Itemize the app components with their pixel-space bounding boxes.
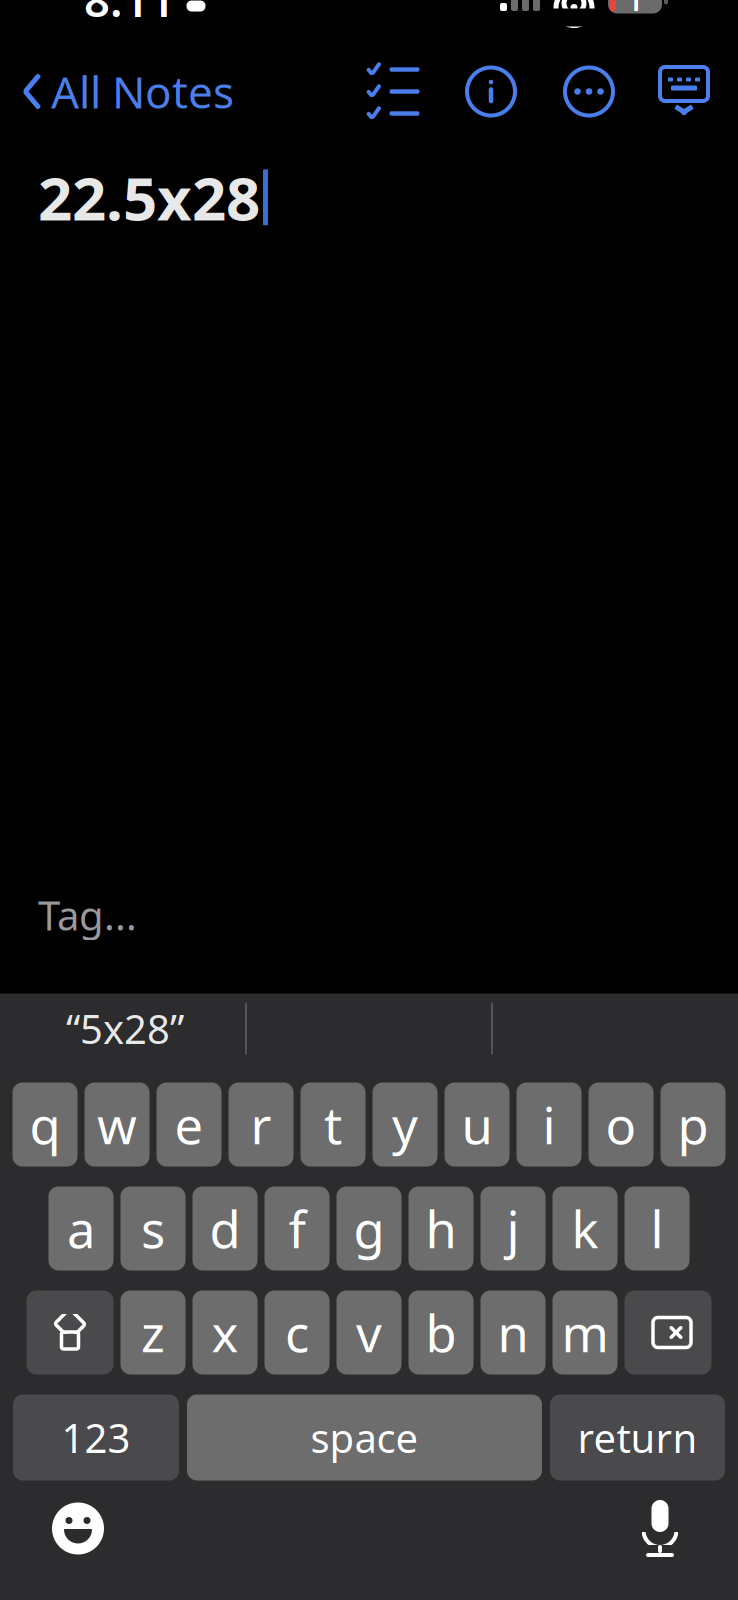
button[interactable]: Dictation [620,1488,700,1568]
staticText: d [209,1195,240,1262]
staticText: b [425,1299,456,1366]
button[interactable]: u [444,1082,509,1166]
button[interactable]: p [660,1082,725,1166]
staticText: n [497,1299,528,1366]
button[interactable]: “5x28” [5,993,245,1063]
staticText: k [571,1195,598,1262]
staticText: r [250,1091,271,1158]
button[interactable]: k [552,1186,617,1270]
staticText: z [141,1299,165,1366]
staticText: l [650,1195,663,1262]
button[interactable]: b [408,1290,473,1374]
staticText: q [29,1091,60,1158]
button[interactable]: Tag... [0,874,738,955]
staticText: w [97,1091,137,1158]
button[interactable]: Info [442,56,540,126]
button[interactable]: x [192,1290,257,1374]
button[interactable]: f [264,1186,329,1270]
button[interactable]: q [12,1082,77,1166]
button[interactable]: n [480,1290,545,1374]
button[interactable]: Shift [26,1290,113,1374]
staticText: v [356,1299,382,1366]
staticText: y [392,1091,418,1158]
staticText: All Notes [51,62,234,121]
staticText: “5x28” [66,1002,184,1055]
button[interactable]: e [156,1082,221,1166]
staticText: p [677,1091,708,1158]
button[interactable]: z [120,1290,185,1374]
staticText: return [577,1411,697,1464]
button[interactable]: More [540,56,638,126]
button[interactable]: Hide Keyboard [638,56,730,126]
staticText: j [506,1195,519,1262]
button[interactable]: y [372,1082,437,1166]
button[interactable]: c [264,1290,329,1374]
button[interactable]: a [48,1186,113,1270]
staticText: s [141,1195,165,1262]
staticText: Tag... [38,888,137,941]
button[interactable]: v [336,1290,401,1374]
button[interactable]: g [336,1186,401,1270]
button[interactable]: m [552,1290,617,1374]
staticText: 22.5x28 [38,157,260,237]
staticText: c [285,1299,309,1366]
button[interactable]: d [192,1186,257,1270]
button[interactable]: All Notes [0,50,234,133]
button[interactable]: w [84,1082,149,1166]
staticText: m [561,1299,608,1366]
button[interactable]: t [300,1082,365,1166]
staticText: i [542,1091,555,1158]
staticText: u [461,1091,492,1158]
staticText: 1 [626,0,643,19]
staticText: t [324,1091,342,1158]
staticText: 123 [61,1411,130,1464]
staticText: o [605,1091,636,1158]
button[interactable]: r [228,1082,293,1166]
staticText: a [67,1195,95,1262]
button[interactable]: return [550,1394,725,1480]
staticText: h [425,1195,456,1262]
staticText: 8:11 [84,0,175,30]
button[interactable]: i [516,1082,581,1166]
button[interactable]: s [120,1186,185,1270]
button[interactable]: l [624,1186,689,1270]
button[interactable]: h [408,1186,473,1270]
button[interactable]: o [588,1082,653,1166]
staticText: e [174,1091,203,1158]
staticText: x [211,1299,238,1366]
button[interactable]: space [187,1394,542,1480]
button[interactable]: j [480,1186,545,1270]
button[interactable]: Delete [624,1290,711,1374]
staticText: space [310,1411,418,1464]
staticText: f [288,1195,305,1262]
button[interactable]: 123 [13,1394,179,1480]
button[interactable]: Emoji [38,1488,118,1568]
button[interactable]: Checklist [344,56,442,126]
staticText: g [353,1195,384,1262]
